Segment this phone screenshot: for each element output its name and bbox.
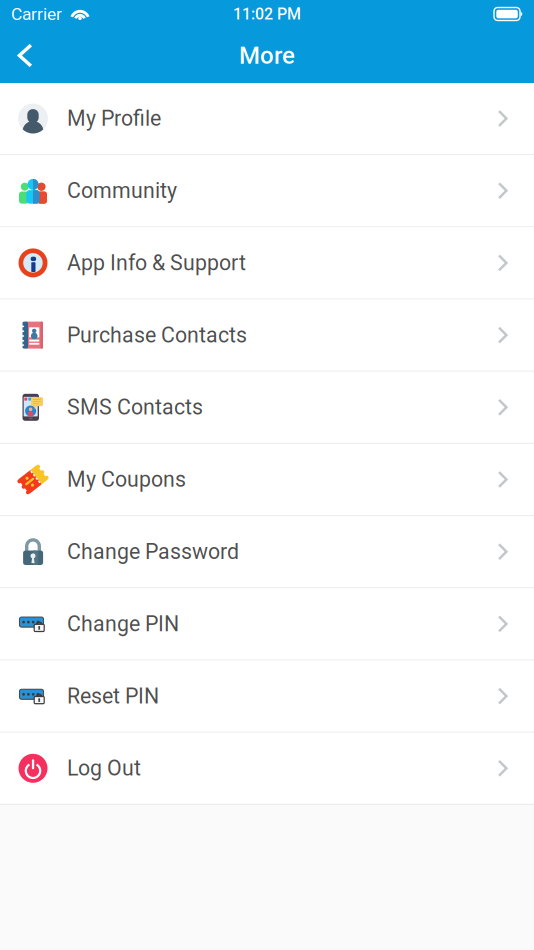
button[interactable]: Log Out [0,733,534,805]
button[interactable]: My Coupons [0,444,534,516]
staticText: Log Out [67,756,141,781]
button[interactable]: SMS Contacts [0,372,534,444]
button[interactable]: App Info & Support [0,227,534,300]
staticText: More [239,41,295,69]
button[interactable]: Purchase Contacts [0,300,534,372]
button[interactable]: Community [0,155,534,227]
staticText: Reset PIN [67,684,159,709]
staticText: Carrier [11,4,62,24]
staticText: Change PIN [67,611,179,636]
button[interactable]: Reset PIN [0,661,534,733]
staticText: Change Password [67,539,239,564]
button[interactable]: Change Password [0,516,534,588]
staticText: Community [67,178,177,203]
staticText: 11:02 PM [233,5,301,23]
button[interactable]: My Profile [0,83,534,155]
button[interactable]: Change PIN [0,588,534,661]
staticText: App Info & Support [67,250,246,275]
staticText: Purchase Contacts [67,323,247,348]
staticText: SMS Contacts [67,395,203,420]
staticText: My Coupons [67,467,186,492]
button[interactable]: Back [0,28,51,83]
staticText: My Profile [67,106,161,131]
